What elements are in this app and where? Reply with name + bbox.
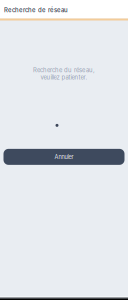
staticText: Recherche de réseau: [4, 6, 68, 14]
staticText: veuillez patienter.: [40, 74, 87, 81]
staticText: Annuler: [54, 153, 73, 160]
staticText: Recherche du réseau,: [33, 66, 95, 74]
button[interactable]: Annuler: [3, 149, 124, 165]
